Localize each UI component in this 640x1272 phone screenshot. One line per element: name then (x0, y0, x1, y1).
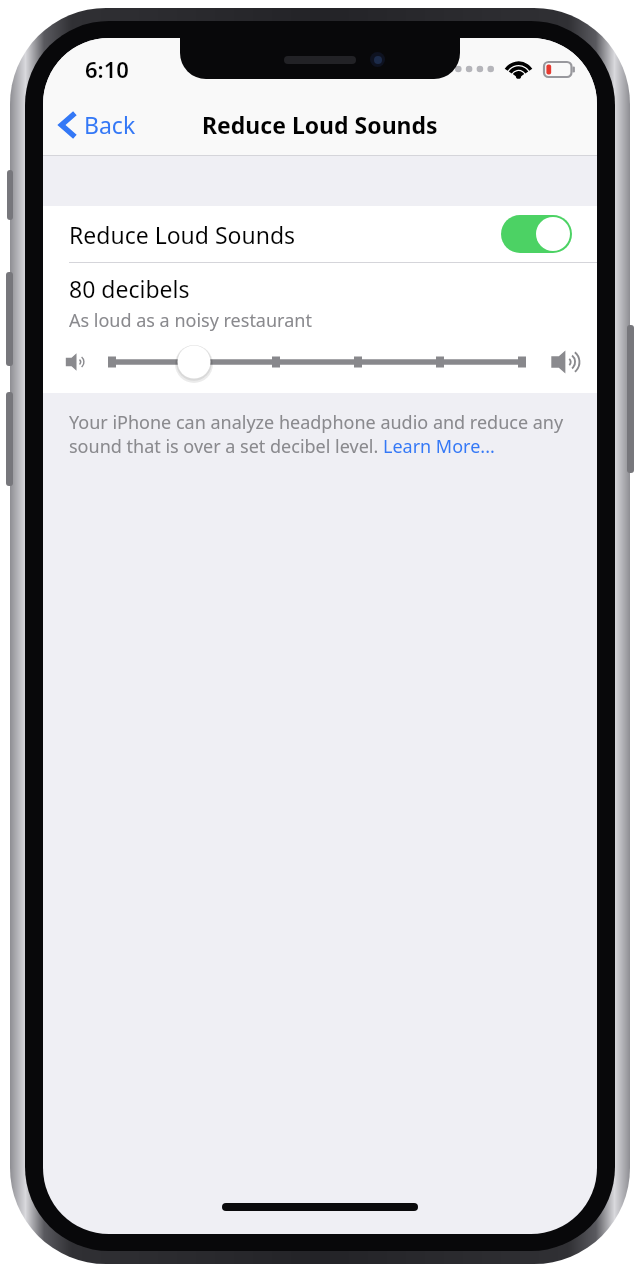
other: Quieter (59, 344, 95, 380)
button[interactable]: Reduce Loud Sounds, on (501, 215, 572, 253)
staticText: Back (84, 109, 136, 140)
button[interactable]: Your iPhone can analyze headphone audio … (43, 393, 597, 470)
staticText: Reduce Loud Sounds (69, 219, 296, 250)
staticText: Reduce Loud Sounds (202, 109, 438, 140)
staticText: 6:10 (85, 54, 129, 84)
button[interactable]: Decibel level (109, 340, 525, 384)
staticText: 80 decibels (69, 273, 190, 304)
staticText: As loud as a noisy restaurant (69, 308, 312, 333)
button[interactable]: Reduce Loud Sounds (43, 206, 597, 262)
button[interactable]: Back (43, 100, 152, 149)
other: Louder (545, 341, 587, 383)
